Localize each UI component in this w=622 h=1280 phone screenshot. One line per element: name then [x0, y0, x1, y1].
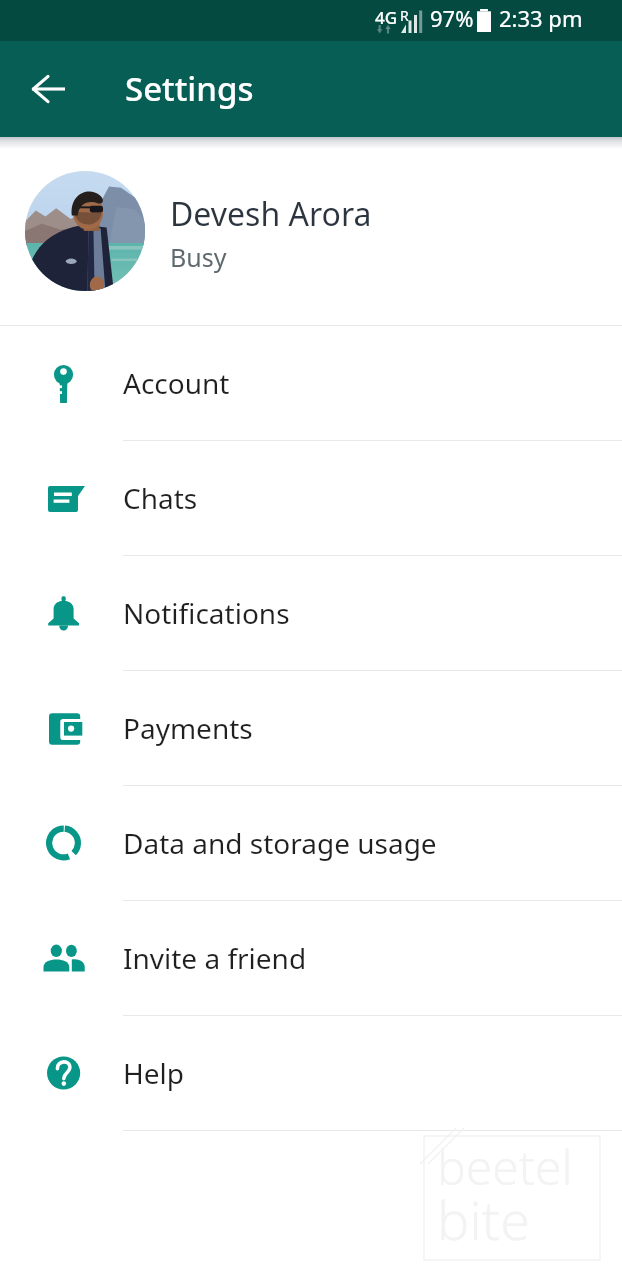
- staticText: Invite a friend: [123, 939, 307, 977]
- button[interactable]: Back: [0, 41, 96, 137]
- staticText: Devesh Arora: [170, 192, 372, 236]
- staticText: 2:33 pm: [499, 3, 583, 33]
- button[interactable]: Account: [0, 326, 622, 440]
- staticText: 4G: [375, 6, 398, 29]
- staticText: beetel: [437, 1134, 573, 1199]
- button[interactable]: Devesh Arora: [0, 137, 622, 325]
- button[interactable]: Chats: [0, 441, 622, 555]
- staticText: Payments: [123, 709, 253, 747]
- staticText: Settings: [125, 66, 254, 111]
- staticText: Help: [123, 1054, 184, 1092]
- button[interactable]: Payments: [0, 671, 622, 785]
- button[interactable]: Help: [0, 1016, 622, 1130]
- staticText: Account: [123, 364, 230, 402]
- staticText: 97%: [430, 3, 474, 33]
- staticText: Busy: [170, 240, 227, 274]
- staticText: R: [400, 6, 409, 25]
- staticText: bite: [437, 1182, 531, 1256]
- staticText: Notifications: [123, 594, 290, 632]
- staticText: Data and storage usage: [123, 824, 437, 862]
- button[interactable]: Notifications: [0, 556, 622, 670]
- button[interactable]: Data and storage usage: [0, 786, 622, 900]
- button[interactable]: Invite a friend: [0, 901, 622, 1015]
- staticText: Chats: [123, 479, 198, 517]
